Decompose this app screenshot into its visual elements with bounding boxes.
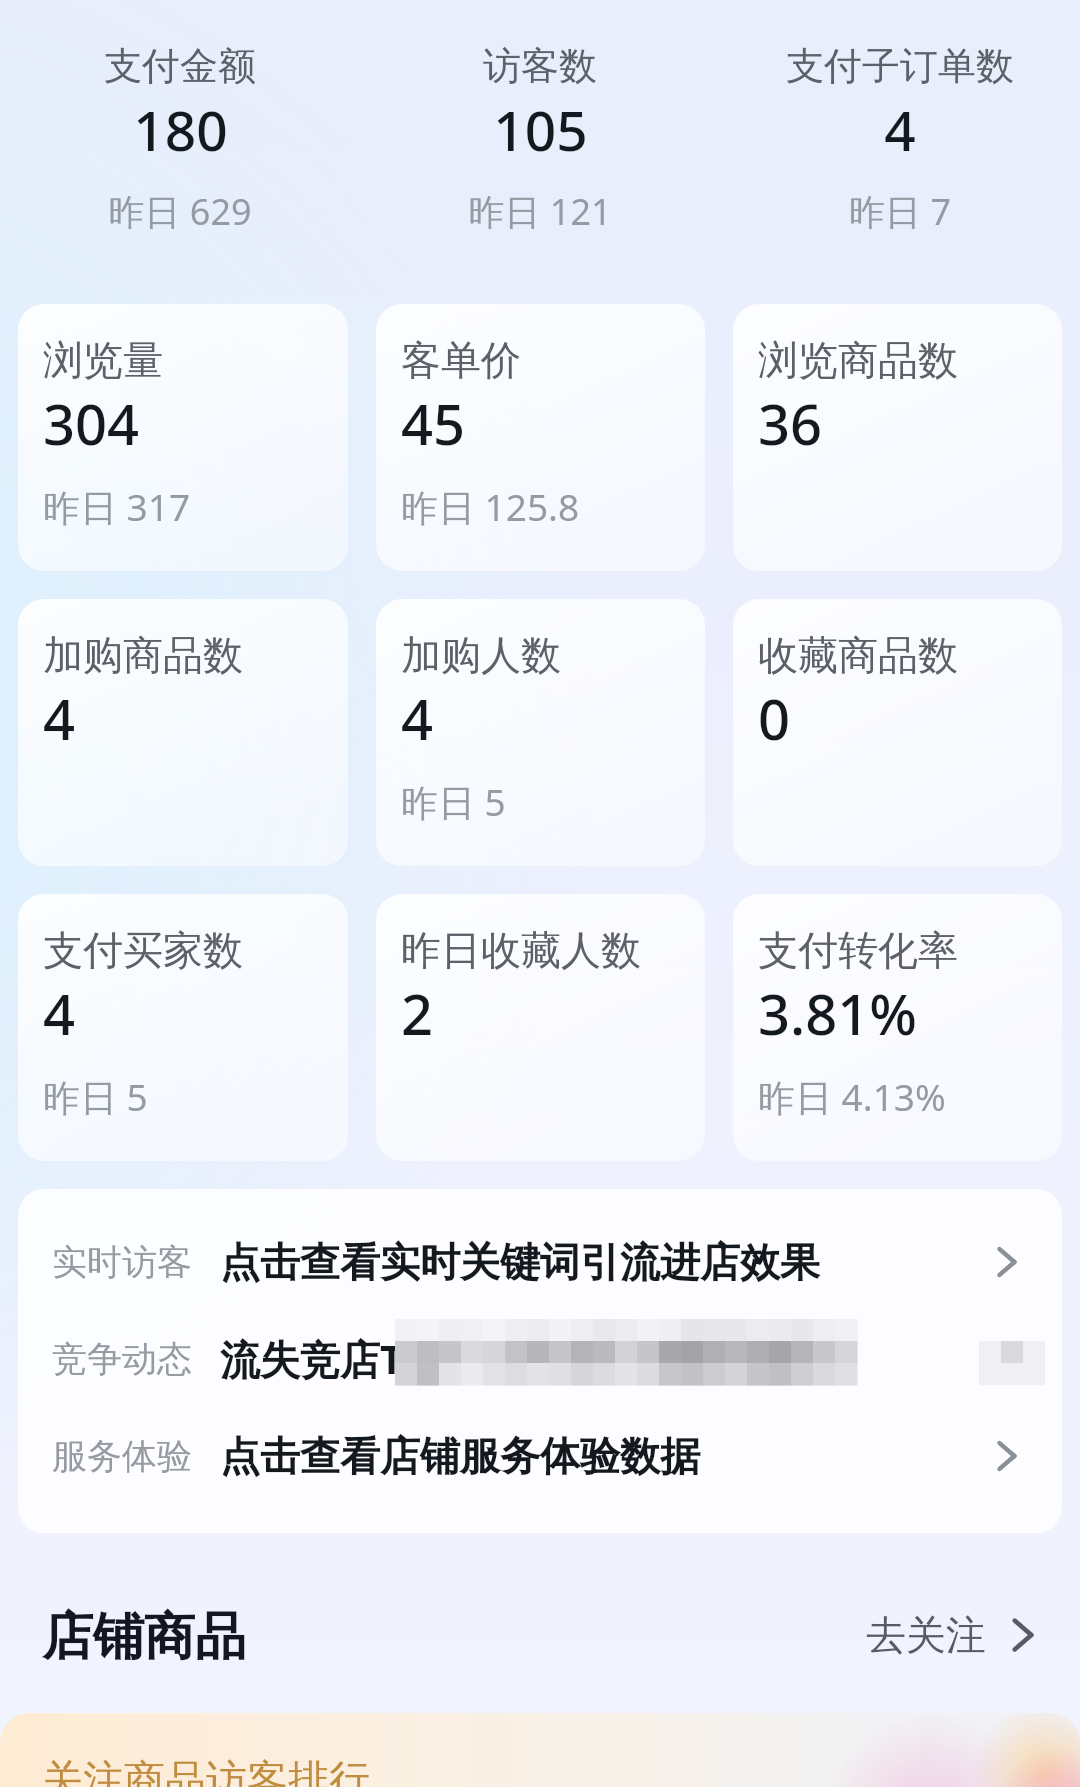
staticText: 昨日 121	[468, 187, 612, 236]
staticText: 昨日 4.13%	[758, 1071, 946, 1122]
button[interactable]: 访客数	[360, 0, 720, 236]
staticText: 3.81%	[758, 975, 918, 1051]
staticText: 105	[493, 92, 588, 167]
other: More	[990, 1439, 1024, 1473]
staticText: 支付买家数	[43, 925, 243, 975]
button[interactable]: 关注商品访客排行	[0, 1713, 1080, 1787]
staticText: 点击查看实时关键词引流进店效果	[220, 1237, 820, 1287]
staticText: 昨日收藏人数	[401, 925, 641, 975]
staticText: 关注商品访客排行	[42, 1755, 370, 1787]
button[interactable]: 支付金额	[0, 0, 360, 236]
staticText: 昨日 5	[43, 1071, 148, 1122]
button[interactable]: 去关注	[866, 1610, 1042, 1660]
button[interactable]: 服务体验	[18, 1407, 1062, 1504]
button[interactable]: 加购商品数	[18, 599, 348, 866]
button[interactable]: 昨日收藏人数	[376, 894, 705, 1161]
staticText: 实时访客	[52, 1240, 192, 1284]
staticText: 4	[884, 92, 916, 167]
button[interactable]: 支付子订单数	[720, 0, 1080, 236]
staticText: 浏览商品数	[758, 335, 958, 385]
button[interactable]: 竞争动态	[18, 1310, 1062, 1407]
staticText: 昨日 125.8	[401, 481, 580, 532]
button[interactable]: 客单价	[376, 304, 705, 571]
staticText: 点击查看店铺服务体验数据	[220, 1431, 700, 1481]
staticText: 服务体验	[52, 1434, 192, 1478]
staticText: 去关注	[866, 1610, 986, 1660]
staticText: 加购人数	[401, 630, 561, 680]
staticText: 收藏商品数	[758, 630, 958, 680]
staticText: 店铺商品	[42, 1605, 246, 1665]
button[interactable]: 收藏商品数	[733, 599, 1062, 866]
button[interactable]: 实时访客	[18, 1213, 1062, 1310]
staticText: 180	[133, 92, 228, 167]
staticText: 4	[401, 680, 434, 756]
staticText: 4	[43, 975, 76, 1051]
other: More	[1004, 1616, 1042, 1654]
other: More	[990, 1245, 1024, 1279]
staticText: 昨日 7	[849, 187, 951, 236]
staticText: 流失竞店T	[220, 1331, 404, 1386]
staticText: 昨日 629	[108, 187, 252, 236]
staticText: 2	[401, 975, 434, 1051]
staticText: 访客数	[483, 42, 597, 90]
staticText: 45	[401, 385, 466, 461]
staticText: 客单价	[401, 335, 521, 385]
staticText: 0	[758, 680, 791, 756]
staticText: 昨日 317	[43, 481, 191, 532]
button[interactable]: 加购人数	[376, 599, 705, 866]
staticText: 加购商品数	[43, 630, 243, 680]
button[interactable]: 支付转化率	[733, 894, 1062, 1161]
staticText: 4	[43, 680, 76, 756]
staticText: 36	[758, 385, 823, 461]
button[interactable]: 支付买家数	[18, 894, 348, 1161]
staticText: 浏览量	[43, 335, 163, 385]
staticText: 支付转化率	[758, 925, 958, 975]
staticText: 支付金额	[104, 42, 256, 90]
button[interactable]: 浏览商品数	[733, 304, 1062, 571]
button[interactable]: 浏览量	[18, 304, 348, 571]
staticText: 304	[43, 385, 140, 461]
staticText: 竞争动态	[52, 1337, 192, 1381]
staticText: 支付子订单数	[786, 42, 1014, 90]
staticText: 昨日 5	[401, 776, 506, 827]
